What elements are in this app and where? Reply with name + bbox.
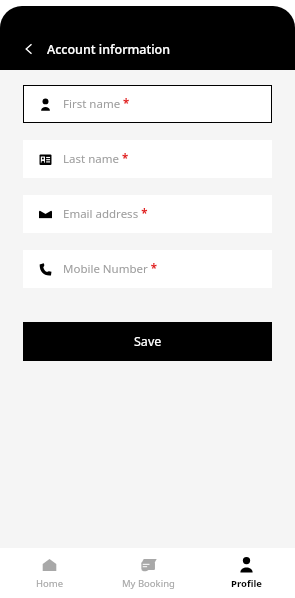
- button[interactable]: Email address *: [23, 195, 272, 233]
- staticText: Last name *: [63, 151, 129, 167]
- staticText: Mobile Number *: [63, 261, 158, 277]
- staticText: Email address *: [63, 206, 148, 222]
- staticText: Account information: [47, 41, 171, 58]
- staticText: Save: [134, 333, 162, 350]
- button[interactable]: My Booking: [99, 548, 197, 598]
- button[interactable]: Profile: [197, 548, 295, 598]
- staticText: Profile: [231, 577, 262, 590]
- button[interactable]: Last name *: [23, 140, 272, 178]
- button[interactable]: Save: [23, 322, 272, 361]
- staticText: My Booking: [122, 577, 175, 590]
- button[interactable]: Back: [20, 40, 38, 58]
- staticText: Home: [36, 577, 64, 590]
- button[interactable]: Mobile Number *: [23, 250, 272, 288]
- staticText: First name *: [63, 96, 130, 112]
- button[interactable]: Home: [0, 548, 99, 598]
- button[interactable]: First name *: [23, 85, 272, 123]
